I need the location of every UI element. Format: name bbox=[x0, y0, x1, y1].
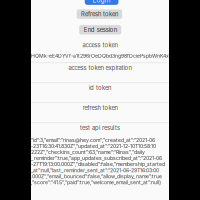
button[interactable]: Refresh token bbox=[77, 9, 122, 19]
staticText: _at":null,"last_reminder_sent_at":"2021-… bbox=[31, 167, 159, 173]
staticText: test api results bbox=[80, 124, 120, 131]
staticText: _reminder":true,"app_updates_subscribed_… bbox=[31, 155, 162, 161]
staticText: Refresh token bbox=[81, 11, 118, 18]
button[interactable]: Login bbox=[85, 0, 118, 5]
staticText: -23T16:30:41.830Z","updated_at":"2021-12… bbox=[31, 143, 156, 149]
staticText: "id":3,"email":"rinas@hey.com","created_… bbox=[31, 137, 155, 143]
staticText: .000Z","email_bounced":false,"allow_disp… bbox=[31, 173, 162, 179]
staticText: access token bbox=[82, 42, 117, 49]
staticText: refresh token bbox=[82, 104, 117, 111]
button[interactable]: End session bbox=[79, 25, 121, 34]
staticText: HQMk-eE4DYVf-a1t296rOeDQbd3ng98fDciePspb… bbox=[31, 53, 183, 59]
staticText: id token bbox=[89, 84, 111, 91]
staticText: -27T19:13:00.000Z","disabled":false,"mem… bbox=[31, 161, 165, 167]
staticText: access token expiration bbox=[68, 64, 131, 71]
staticText: End session bbox=[84, 26, 117, 33]
staticText: ,"score":"41.5","paid":true,"welcome_ema… bbox=[31, 179, 161, 185]
staticText: Login bbox=[93, 0, 111, 4]
staticText: 222Z","checkins_count":63,"name":"Rinas"… bbox=[31, 149, 145, 155]
